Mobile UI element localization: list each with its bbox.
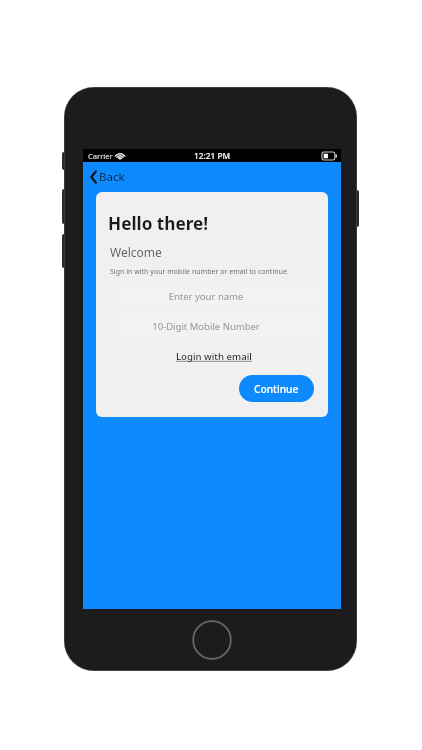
staticText: Sign in with your mobile number or email… [110, 266, 289, 276]
staticText: Hello there! [108, 212, 209, 235]
staticText: 10-Digit Mobile Number [126, 320, 286, 333]
staticText: Carrier [88, 151, 113, 161]
staticText: Welcome [110, 244, 162, 260]
button[interactable]: 10-Digit Mobile Number [117, 312, 320, 340]
staticText: Enter your name [126, 290, 286, 303]
button[interactable]: Back [83, 162, 341, 192]
button[interactable]: Login with email [172, 346, 256, 367]
staticText: 12:21 PM [194, 150, 231, 161]
button[interactable]: Continue [239, 375, 314, 402]
staticText: Back [99, 169, 125, 185]
staticText: Login with email [176, 350, 252, 363]
staticText: Continue [254, 382, 299, 396]
button[interactable]: Enter your name [117, 284, 320, 308]
